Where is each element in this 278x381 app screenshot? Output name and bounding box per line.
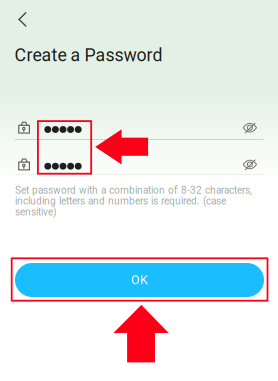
staticText: Set password with a combination of 8-32 … [15, 184, 252, 196]
staticText: Create a Password [15, 45, 163, 66]
staticText: sensitive) [15, 206, 57, 218]
button[interactable]: OK [15, 263, 264, 297]
button[interactable]: Back [4, 1, 40, 37]
button[interactable]: Show password [235, 150, 265, 180]
button[interactable]: Show password [235, 113, 265, 143]
staticText: OK [131, 273, 148, 287]
staticText: including letters and numbers is require… [15, 195, 226, 207]
